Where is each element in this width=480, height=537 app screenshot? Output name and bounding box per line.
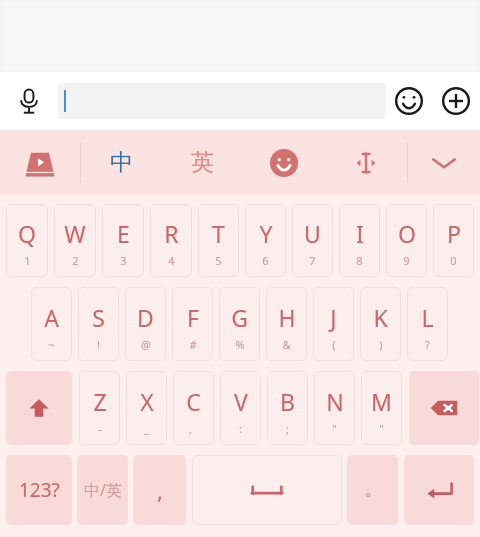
staticText: 1 (24, 253, 31, 268)
staticText: & (282, 337, 291, 352)
staticText: " (332, 421, 337, 436)
staticText: , (157, 475, 163, 505)
staticText: _ (144, 421, 149, 436)
staticText: W (64, 218, 86, 249)
staticText: K (373, 302, 388, 333)
button[interactable]: Enter (404, 455, 474, 525)
staticText: ~ (48, 337, 55, 352)
staticText: ; (286, 421, 289, 436)
staticText: R (164, 218, 179, 249)
staticText: 英 (191, 148, 214, 177)
button[interactable]: Emoji (386, 72, 432, 130)
button[interactable]: K (360, 287, 401, 361)
staticText: 6 (262, 253, 269, 268)
button[interactable] (58, 83, 386, 119)
button[interactable]: Shift (6, 371, 72, 445)
staticText: D (137, 302, 154, 333)
staticText: 中 (110, 148, 133, 177)
button[interactable]: H (266, 287, 307, 361)
button[interactable]: R (150, 204, 192, 277)
staticText: ) (379, 337, 383, 352)
button[interactable]: B (267, 371, 308, 445)
staticText: X (140, 386, 154, 417)
staticText: H (278, 302, 296, 333)
button[interactable]: 123? (6, 455, 72, 525)
staticText: 0 (450, 253, 457, 268)
staticText: % (235, 337, 245, 352)
button[interactable]: V (220, 371, 261, 445)
staticText: V (234, 386, 248, 417)
staticText: 8 (356, 253, 363, 268)
button[interactable]: Add (432, 72, 480, 130)
staticText: 7 (309, 253, 316, 268)
staticText: U (304, 218, 321, 249)
staticText: 2 (72, 253, 79, 268)
button[interactable]: M (361, 371, 402, 445)
button[interactable]: N (314, 371, 355, 445)
staticText: 。 (365, 480, 381, 500)
staticText: Q (18, 218, 36, 249)
button[interactable]: P (433, 204, 474, 277)
button[interactable]: 。 (347, 455, 398, 525)
staticText: 5 (215, 253, 222, 268)
button[interactable]: , (133, 455, 186, 525)
button[interactable]: G (219, 287, 260, 361)
button[interactable]: I (339, 204, 380, 277)
staticText: N (326, 386, 344, 417)
button[interactable]: F (172, 287, 213, 361)
button[interactable]: Emoticons (243, 130, 325, 195)
staticText: F (187, 302, 199, 333)
button[interactable]: Q (6, 204, 48, 277)
button[interactable]: C (173, 371, 214, 445)
button[interactable]: Hide keyboard (408, 130, 480, 195)
button[interactable]: O (386, 204, 427, 277)
staticText: " (379, 421, 384, 436)
staticText: - (98, 421, 102, 436)
button[interactable]: 中/英 (77, 455, 128, 525)
button[interactable]: Voice input (0, 72, 58, 130)
staticText: L (421, 302, 434, 333)
staticText: Y (259, 218, 273, 249)
button[interactable]: Move cursor (325, 130, 407, 195)
staticText: G (231, 302, 248, 333)
button[interactable]: Space (192, 455, 342, 525)
button[interactable]: Theme skin (0, 130, 80, 195)
staticText: E (117, 218, 130, 249)
staticText: O (398, 218, 416, 249)
button[interactable]: 英 (162, 130, 243, 195)
staticText: 123? (19, 477, 60, 503)
button[interactable]: 中 (81, 130, 162, 195)
staticText: M (371, 386, 392, 417)
button[interactable]: L (407, 287, 448, 361)
button[interactable]: U (292, 204, 333, 277)
button[interactable]: D (125, 287, 166, 361)
staticText: : (239, 421, 242, 436)
staticText: 9 (403, 253, 410, 268)
staticText: T (212, 218, 225, 249)
staticText: ? (425, 337, 430, 352)
button[interactable]: W (54, 204, 96, 277)
button[interactable]: J (313, 287, 354, 361)
staticText: 4 (168, 253, 175, 268)
staticText: 3 (120, 253, 127, 268)
staticText: P (447, 218, 461, 249)
button[interactable]: E (102, 204, 144, 277)
button[interactable]: S (78, 287, 119, 361)
staticText: A (44, 302, 59, 333)
staticText: C (186, 386, 201, 417)
staticText: ( (332, 337, 336, 352)
staticText: 、 (188, 422, 199, 436)
staticText: I (356, 218, 364, 249)
staticText: B (280, 386, 295, 417)
button[interactable]: X (126, 371, 167, 445)
staticText: @ (141, 337, 151, 352)
staticText: 中/英 (84, 479, 122, 501)
button[interactable]: Backspace (409, 371, 479, 445)
staticText: S (92, 302, 105, 333)
button[interactable]: A (31, 287, 72, 361)
button[interactable]: Z (79, 371, 120, 445)
staticText: J (330, 302, 337, 333)
button[interactable]: T (198, 204, 239, 277)
staticText: ! (97, 337, 100, 352)
button[interactable]: Y (245, 204, 286, 277)
